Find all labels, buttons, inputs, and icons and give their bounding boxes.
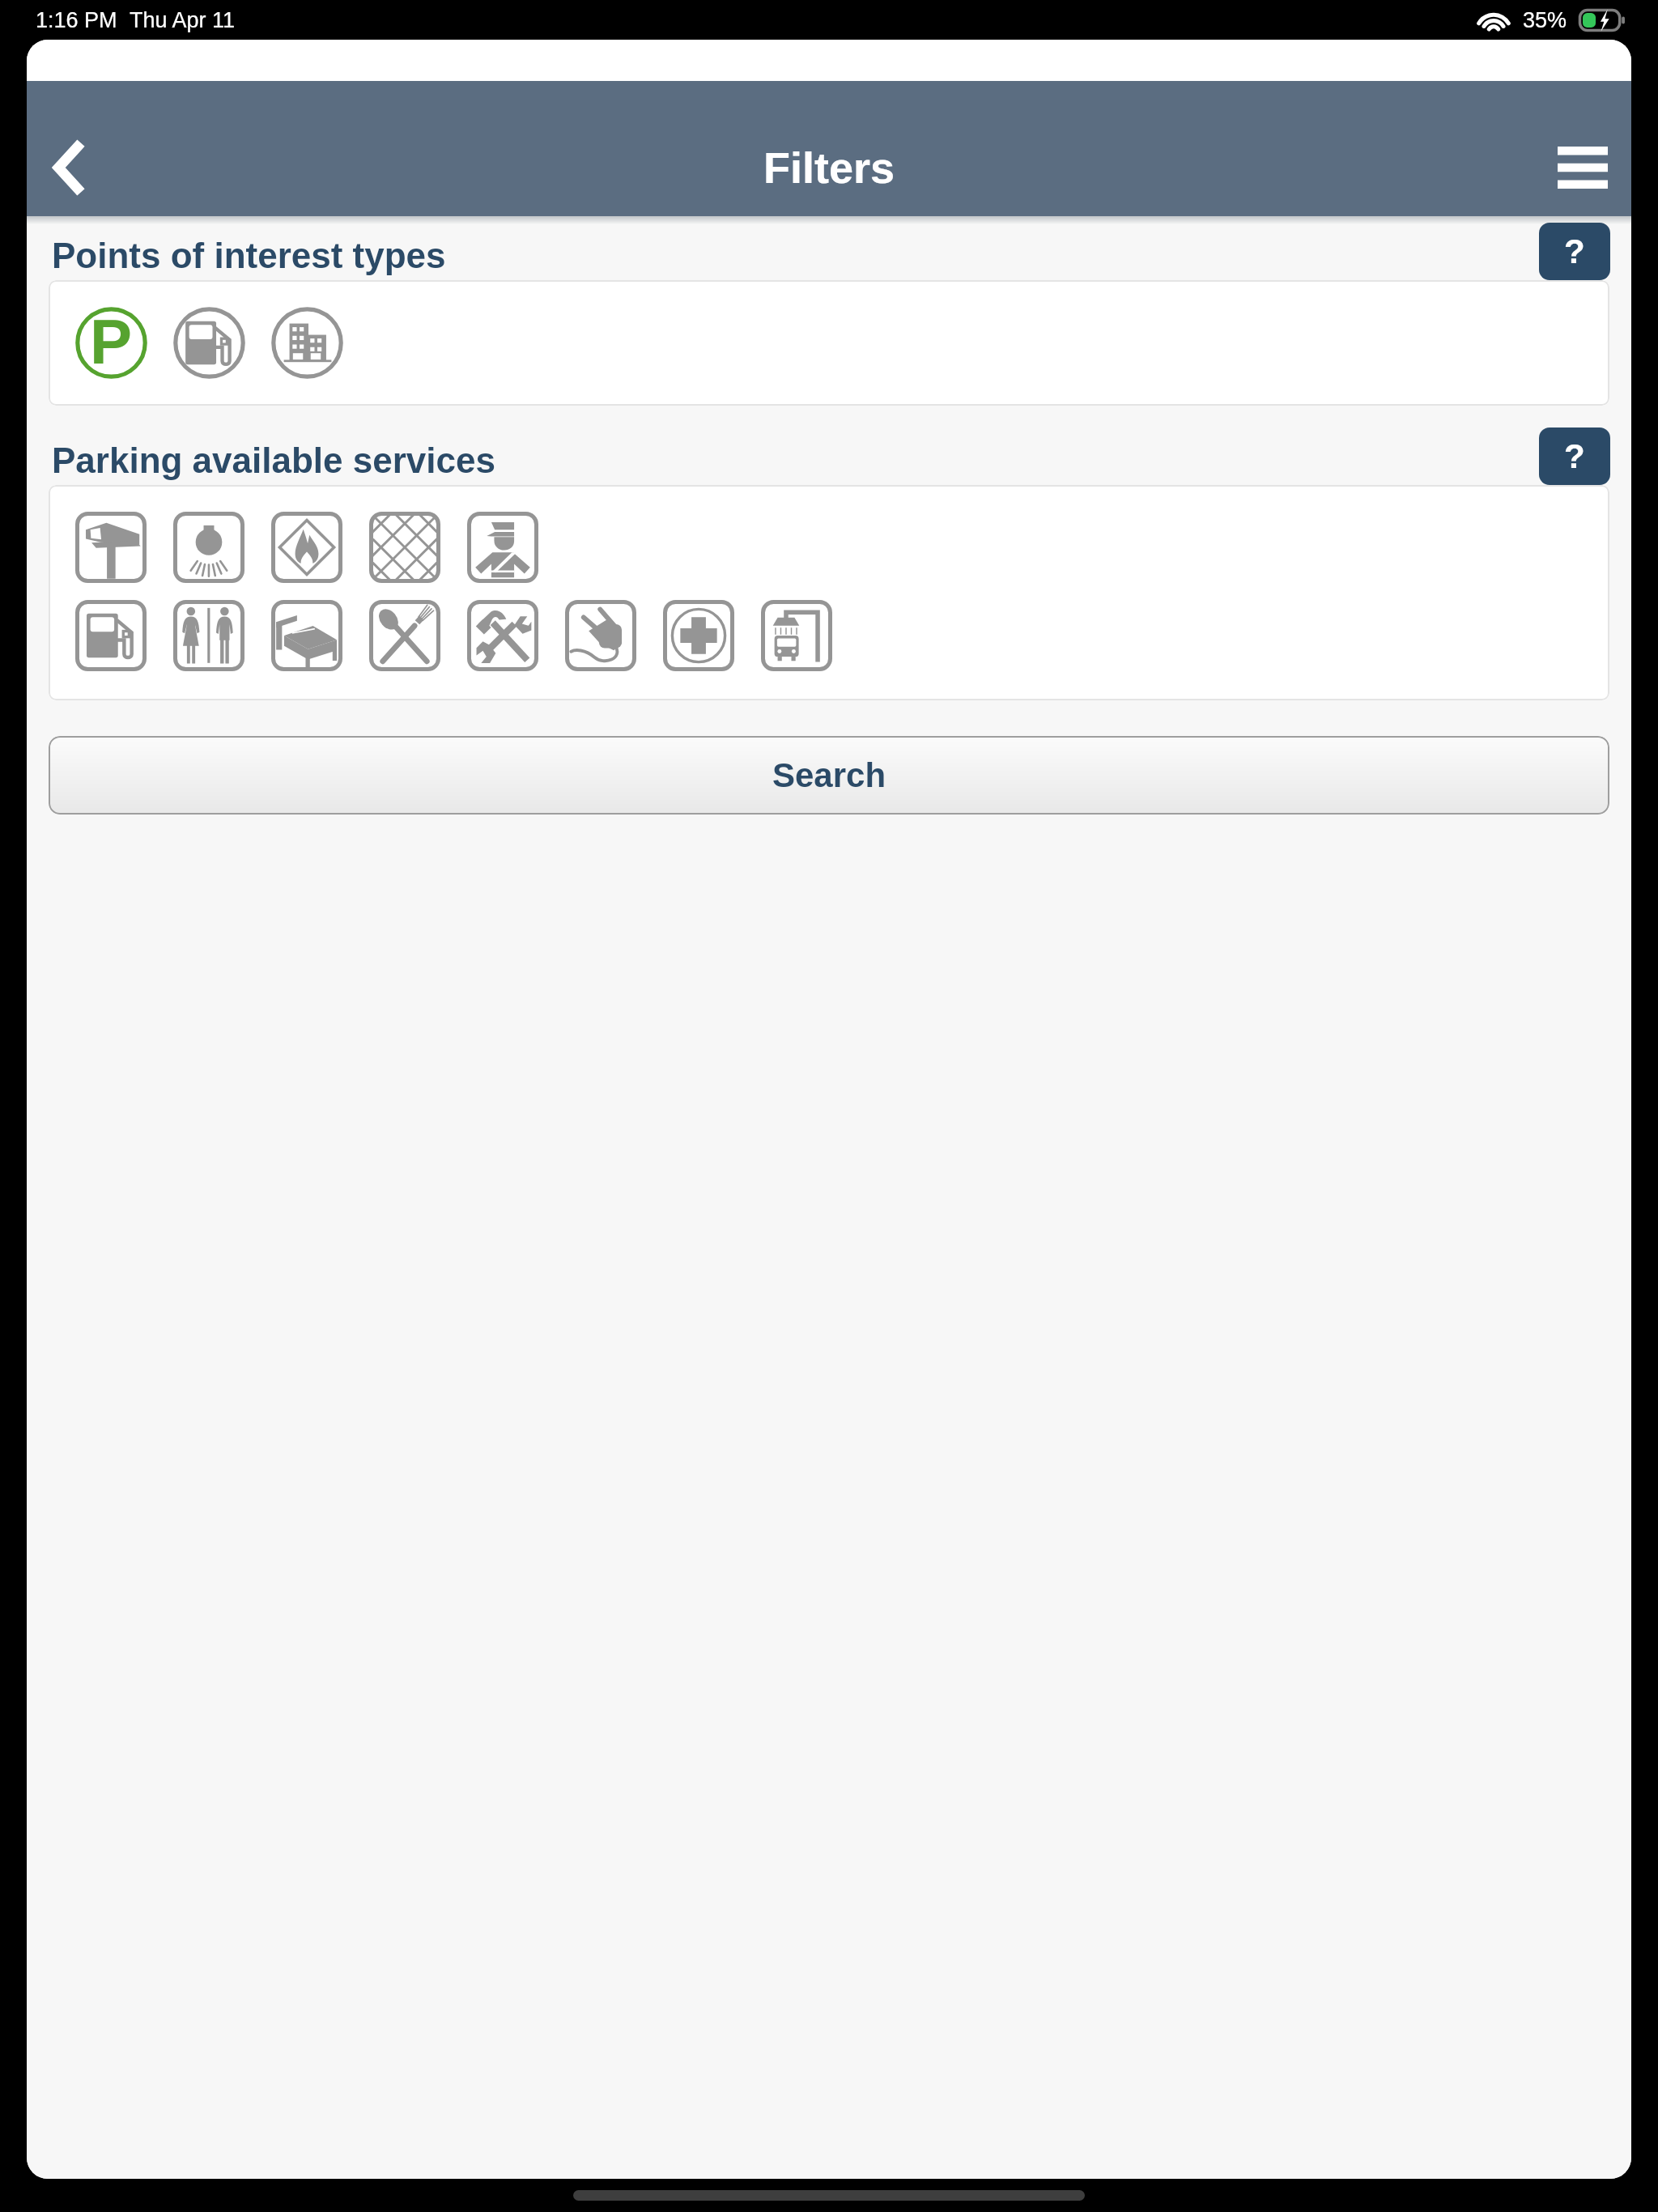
button[interactable]: Fenced bbox=[369, 512, 440, 583]
button[interactable]: Medical bbox=[663, 600, 734, 671]
staticText: Thu Apr 11 bbox=[130, 8, 236, 32]
button[interactable]: Electric hookup bbox=[565, 600, 636, 671]
staticText: Points of interest types bbox=[52, 236, 446, 275]
button[interactable]: Security guard bbox=[467, 512, 538, 583]
staticText: P bbox=[90, 306, 133, 376]
button[interactable]: Restrooms bbox=[173, 600, 244, 671]
button[interactable]: Repairs bbox=[467, 600, 538, 671]
staticText: ? bbox=[1564, 232, 1585, 270]
button[interactable]: Hotel bbox=[271, 307, 343, 379]
button[interactable]: Video surveillance bbox=[75, 512, 147, 583]
button[interactable]: Menu bbox=[1544, 129, 1622, 206]
staticText: Parking available services bbox=[52, 440, 495, 480]
button[interactable]: Search bbox=[49, 736, 1609, 815]
button[interactable]: Back bbox=[29, 129, 107, 206]
button[interactable]: Help bbox=[1539, 428, 1610, 485]
staticText: Filters bbox=[763, 143, 895, 192]
button[interactable]: Fuel bbox=[75, 600, 147, 671]
button[interactable]: Fuel station bbox=[173, 307, 245, 379]
staticText: 35% bbox=[1523, 8, 1567, 32]
button[interactable]: Accommodation bbox=[271, 600, 342, 671]
button[interactable]: Truck shower bbox=[761, 600, 832, 671]
button[interactable]: Lighting bbox=[173, 512, 244, 583]
button[interactable]: Help bbox=[1539, 223, 1610, 280]
staticText: Search bbox=[772, 756, 886, 794]
staticText: ? bbox=[1564, 437, 1585, 475]
button[interactable]: Fire safety bbox=[271, 512, 342, 583]
button[interactable]: Restaurant bbox=[369, 600, 440, 671]
button[interactable]: Parking bbox=[75, 307, 147, 379]
staticText: 1:16 PM bbox=[36, 8, 117, 32]
